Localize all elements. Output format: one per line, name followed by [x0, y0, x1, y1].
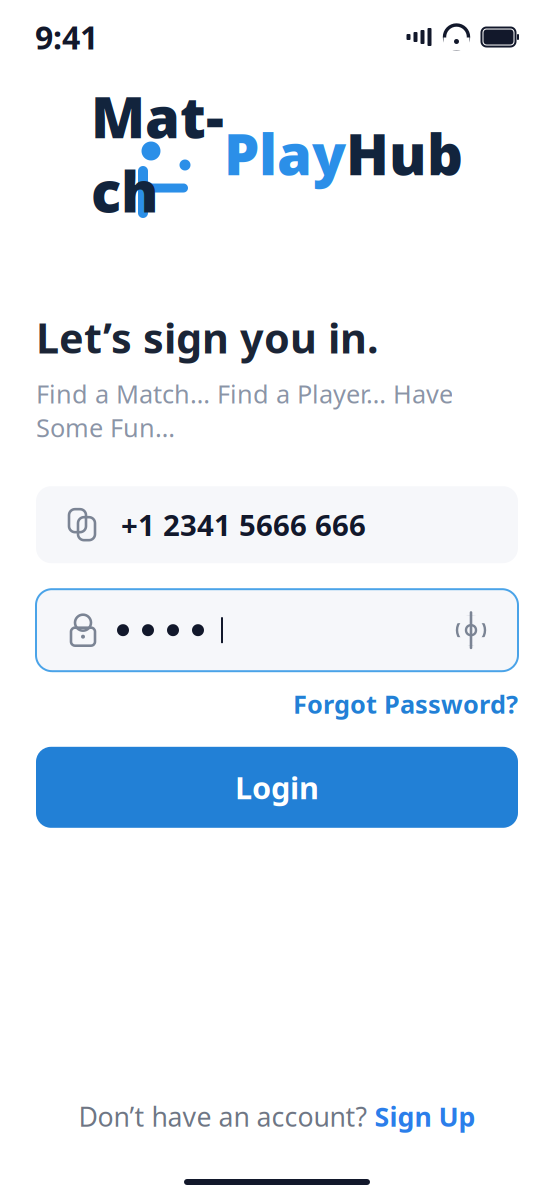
button[interactable]: Login: [36, 747, 518, 828]
staticText: Hub: [346, 116, 463, 191]
button[interactable]: Forgot Password?: [293, 687, 518, 721]
staticText: Don’t have an account?: [78, 1099, 367, 1134]
button[interactable]: +1 2341 5666 666: [36, 486, 518, 563]
staticText: Find a Match… Find a Player… Have Some F…: [36, 377, 453, 444]
staticText: Login: [235, 767, 319, 808]
button[interactable]: [36, 589, 518, 671]
staticText: Let’s sign you in.: [36, 310, 379, 365]
staticText: Play: [224, 116, 346, 191]
staticText: 9:41: [35, 16, 98, 58]
staticText: Sign Up: [374, 1099, 475, 1134]
staticText: Match: [91, 79, 224, 228]
button[interactable]: Don’t have an account?: [78, 1099, 475, 1134]
staticText: +1 2341 5666 666: [121, 505, 366, 544]
staticText: Forgot Password?: [293, 687, 518, 721]
